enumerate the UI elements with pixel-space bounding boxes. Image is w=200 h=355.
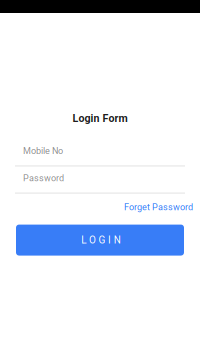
- staticText: LOGIN: [81, 234, 121, 246]
- staticText: Mobile No: [23, 145, 63, 156]
- staticText: Forget Password: [124, 202, 193, 213]
- staticText: Password: [23, 173, 64, 183]
- button[interactable]: Password: [0, 173, 200, 194]
- staticText: Login Form: [72, 112, 127, 124]
- button[interactable]: Forget Password: [0, 202, 200, 213]
- button[interactable]: LOGIN: [0, 225, 200, 256]
- button[interactable]: Mobile No: [0, 145, 200, 167]
